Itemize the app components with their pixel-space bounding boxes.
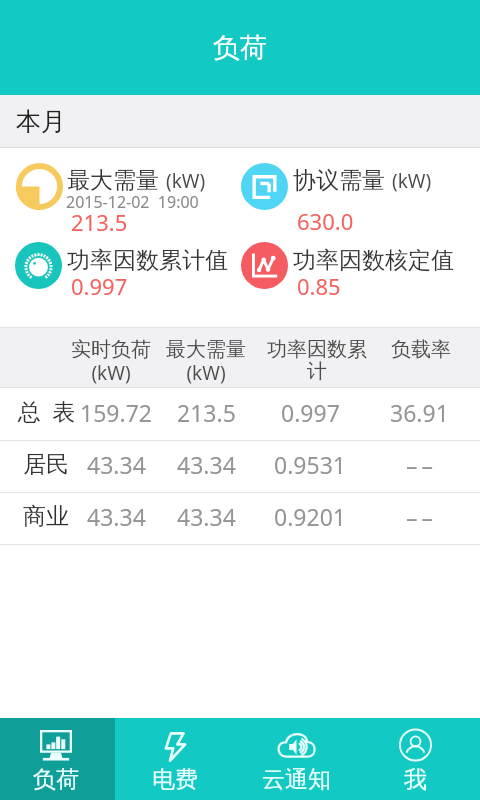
staticText: (kW) — [392, 168, 432, 194]
button[interactable]: 商业 — [0, 493, 480, 544]
staticText: 0.9201 — [274, 501, 346, 532]
staticText: 最大需量 — [67, 166, 159, 195]
staticText: 云通知 — [262, 765, 331, 794]
staticText: 0.997 — [281, 397, 340, 428]
staticText: 630.0 — [297, 206, 354, 236]
button[interactable] — [357, 718, 473, 800]
button[interactable] — [117, 718, 233, 800]
staticText: 43.34 — [87, 449, 146, 480]
other: 云通知 — [276, 731, 317, 758]
staticText: (kW) — [91, 360, 131, 386]
button[interactable] — [12, 155, 234, 233]
staticText: 43.34 — [87, 501, 146, 532]
button[interactable]: 居民 — [0, 441, 480, 492]
staticText: 213.5 — [71, 207, 128, 237]
staticText: 43.34 — [177, 501, 236, 532]
button[interactable] — [238, 718, 354, 800]
staticText: 功率因数核定值 — [293, 246, 454, 275]
button[interactable] — [237, 234, 459, 306]
staticText: 本月 — [16, 106, 66, 137]
staticText: 213.5 — [177, 397, 236, 428]
staticText: 最大需量 — [166, 337, 246, 362]
staticText: 商业 — [23, 502, 69, 531]
staticText: 电费 — [152, 765, 198, 794]
staticText: 43.34 — [177, 449, 236, 480]
staticText: (kW) — [186, 360, 226, 386]
staticText: 居民 — [23, 450, 69, 479]
staticText: 36.91 — [390, 397, 449, 428]
staticText: 功率因数累 — [267, 337, 367, 362]
button[interactable] — [11, 234, 233, 306]
staticText: –– — [404, 501, 435, 532]
staticText: 功率因数累计值 — [67, 246, 228, 275]
button[interactable] — [0, 718, 114, 800]
other: 负荷 — [40, 730, 72, 761]
button[interactable] — [237, 155, 459, 227]
other: 电费 — [164, 731, 187, 763]
staticText: 159.72 — [80, 397, 152, 428]
staticText: 2015-12-02 19:00 — [66, 191, 199, 213]
staticText: 0.85 — [297, 271, 341, 301]
staticText: 我 — [404, 765, 427, 794]
button[interactable]: 总表 — [0, 388, 480, 440]
staticText: 协议需量 — [293, 166, 385, 195]
staticText: 负载率 — [391, 337, 451, 362]
staticText: 负荷 — [213, 31, 267, 65]
staticText: 实时负荷 — [71, 337, 151, 362]
staticText: 总表 — [12, 398, 81, 427]
staticText: –– — [404, 449, 435, 480]
staticText: 计 — [307, 359, 327, 384]
staticText: 负荷 — [33, 765, 79, 794]
staticText: 0.9531 — [274, 449, 346, 480]
other: 我 — [399, 728, 432, 762]
staticText: 0.997 — [71, 271, 128, 301]
staticText: (kW) — [166, 168, 206, 194]
